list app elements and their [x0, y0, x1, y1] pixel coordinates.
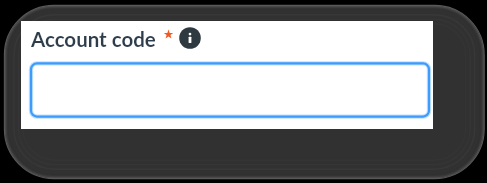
- button[interactable]: [27, 59, 433, 121]
- button[interactable]: More information: [178, 26, 202, 50]
- staticText: Account code: [31, 27, 156, 52]
